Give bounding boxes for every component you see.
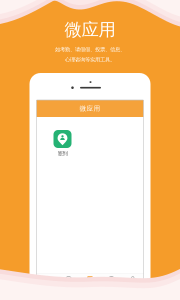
staticText: 签到 [57, 150, 67, 157]
button[interactable]: 发现 [101, 276, 122, 288]
staticText: 微应用 [79, 104, 100, 113]
button[interactable]: 签到 [36, 117, 75, 157]
staticText: 微应用 [64, 19, 115, 40]
staticText: 心理咨询等实用工具。 [65, 56, 115, 63]
button[interactable]: 通讯录 [58, 276, 79, 288]
staticText: 消息 [43, 283, 51, 288]
staticText: 微应用 [84, 283, 96, 288]
staticText: 如考勤、请假假、投票、信息、 [55, 46, 125, 53]
button[interactable]: 微应用 [79, 276, 101, 288]
staticText: 通讯录 [63, 283, 75, 288]
staticText: 发现 [107, 283, 115, 288]
button[interactable]: 我的 [122, 276, 143, 288]
button[interactable]: 消息 [36, 276, 58, 288]
